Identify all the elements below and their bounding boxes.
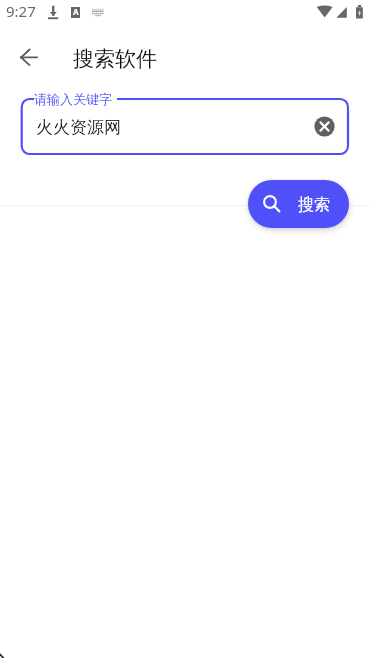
button[interactable]: Clear text xyxy=(312,114,336,138)
button[interactable]: 搜索 xyxy=(248,180,349,228)
staticText: 搜索软件 xyxy=(73,46,157,72)
staticText: 9:27 xyxy=(6,1,36,21)
staticText: 请输入关键字 xyxy=(34,91,112,107)
staticText: 搜索 xyxy=(298,195,330,215)
staticText: 火火资源网 xyxy=(36,117,121,138)
staticText: A xyxy=(73,6,79,17)
button[interactable]: Back xyxy=(11,39,47,75)
